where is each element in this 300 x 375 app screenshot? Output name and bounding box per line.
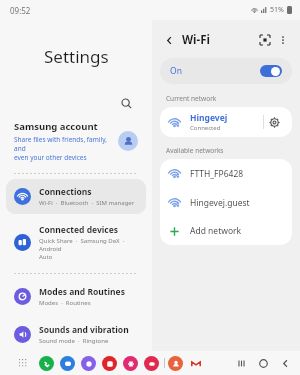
staticText: Share files with friends, family, and ev… xyxy=(14,135,112,162)
button[interactable]: Back xyxy=(160,31,178,49)
staticText: Current network xyxy=(166,94,217,103)
staticText: 51% xyxy=(270,5,284,15)
staticText: Modes and Routines xyxy=(39,286,125,298)
button[interactable]: Gmail xyxy=(188,356,203,371)
staticText: Connections xyxy=(39,186,92,198)
staticText: Wi-Fi xyxy=(182,32,210,48)
button[interactable]: App 3 xyxy=(102,356,117,371)
staticText: Available networks xyxy=(166,146,224,155)
staticText: FTTH_FP6428 xyxy=(190,168,244,180)
button[interactable]: App 5 xyxy=(144,356,159,371)
button[interactable]: More options xyxy=(274,31,292,49)
button[interactable]: App 0 xyxy=(39,356,54,371)
staticText: Connected devices xyxy=(39,224,119,236)
staticText: Sound mode · Ringtone xyxy=(39,337,109,344)
staticText: Add network xyxy=(190,225,242,237)
button[interactable]: Hingevej.guest xyxy=(160,188,292,217)
staticText: Sounds and vibration xyxy=(39,324,129,336)
button[interactable]: App 1 xyxy=(60,356,75,371)
button[interactable]: Hingevej xyxy=(160,107,292,137)
button[interactable]: On xyxy=(160,58,292,84)
button[interactable]: Recents xyxy=(230,352,252,374)
button[interactable]: Network settings xyxy=(264,112,284,132)
button[interactable]: App 2 xyxy=(81,356,96,371)
staticText: Connected xyxy=(190,124,221,132)
button[interactable]: Scan QR code xyxy=(256,31,274,49)
button[interactable]: Search xyxy=(0,92,152,114)
button[interactable]: Apps xyxy=(16,356,30,370)
button[interactable]: Contacts xyxy=(168,356,183,371)
staticText: On xyxy=(170,65,182,77)
button[interactable]: Home xyxy=(252,352,274,374)
button[interactable]: Modes and Routines xyxy=(6,279,146,314)
staticText: Wi-Fi · Bluetooth · SIM manager xyxy=(39,199,135,207)
staticText: Hingevej xyxy=(190,112,228,124)
staticText: Samsung account xyxy=(14,120,98,133)
button[interactable]: Sounds and vibration xyxy=(6,317,146,351)
button[interactable]: FTTH_FP6428 xyxy=(160,159,292,188)
staticText: Hingevej.guest xyxy=(190,197,250,209)
staticText: Modes · Routines xyxy=(39,299,91,307)
button[interactable]: Samsung account xyxy=(0,114,152,168)
button[interactable]: Connections xyxy=(6,179,146,214)
staticText: Settings xyxy=(44,45,109,68)
staticText: Quick Share · Samsung DeX · Android Auto xyxy=(39,237,138,261)
button[interactable]: Connected devices xyxy=(6,217,146,268)
button[interactable]: Add network xyxy=(160,217,292,245)
button[interactable]: Back xyxy=(274,352,296,374)
button[interactable]: App 4 xyxy=(123,356,138,371)
staticText: 09:52 xyxy=(10,5,31,16)
